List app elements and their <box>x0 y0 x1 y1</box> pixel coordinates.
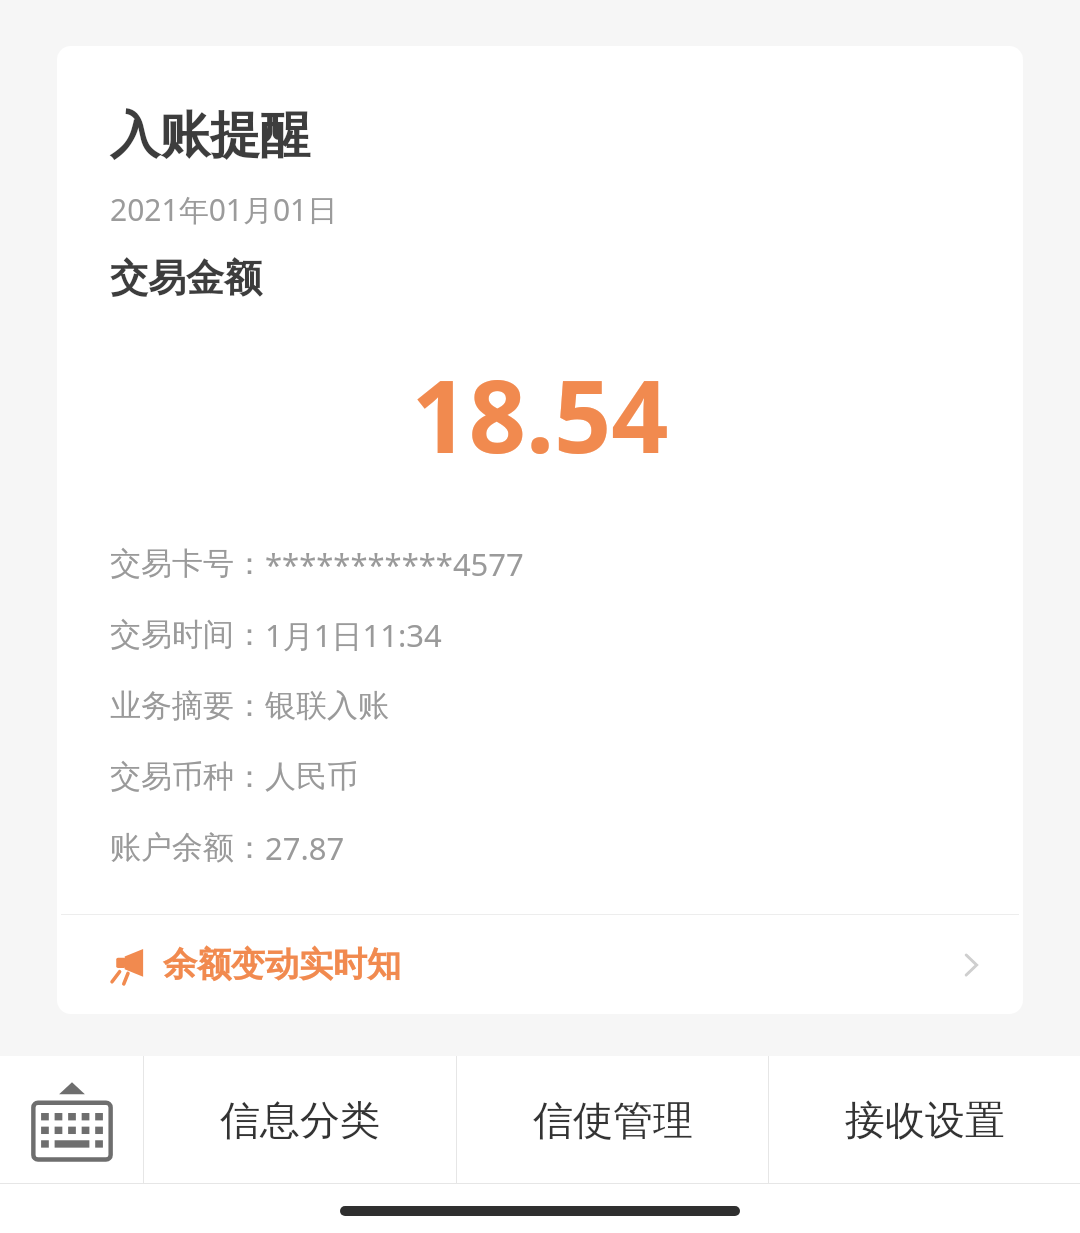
staticText: 账户余额： <box>110 828 265 867</box>
button[interactable]: 信使管理 <box>457 1056 768 1183</box>
staticText: 交易卡号： <box>110 544 265 583</box>
staticText: 交易金额 <box>110 254 262 302</box>
button[interactable]: 信息分类 <box>144 1056 456 1183</box>
button[interactable]: Keyboard <box>0 1056 143 1183</box>
staticText: 27.87 <box>265 827 345 869</box>
staticText: 1月1日11:34 <box>265 614 442 656</box>
staticText: 人民币 <box>265 757 358 796</box>
staticText: 2021年01月01日 <box>110 189 338 230</box>
staticText: 余额变动实时知 <box>163 943 401 986</box>
button[interactable]: Announcement <box>57 915 1023 1014</box>
staticText: 信使管理 <box>533 1095 693 1145</box>
staticText: 18.54 <box>57 346 1023 482</box>
staticText: 交易币种： <box>110 757 265 796</box>
staticText: 接收设置 <box>845 1095 1005 1145</box>
staticText: 交易时间： <box>110 615 265 654</box>
staticText: 业务摘要： <box>110 686 265 725</box>
staticText: 入账提醒 <box>110 104 310 167</box>
button[interactable]: 接收设置 <box>769 1056 1080 1183</box>
staticText: 信息分类 <box>220 1095 380 1145</box>
staticText: ***********4577 <box>265 543 524 585</box>
staticText: 银联入账 <box>265 686 389 725</box>
other: Announcement <box>107 944 149 986</box>
